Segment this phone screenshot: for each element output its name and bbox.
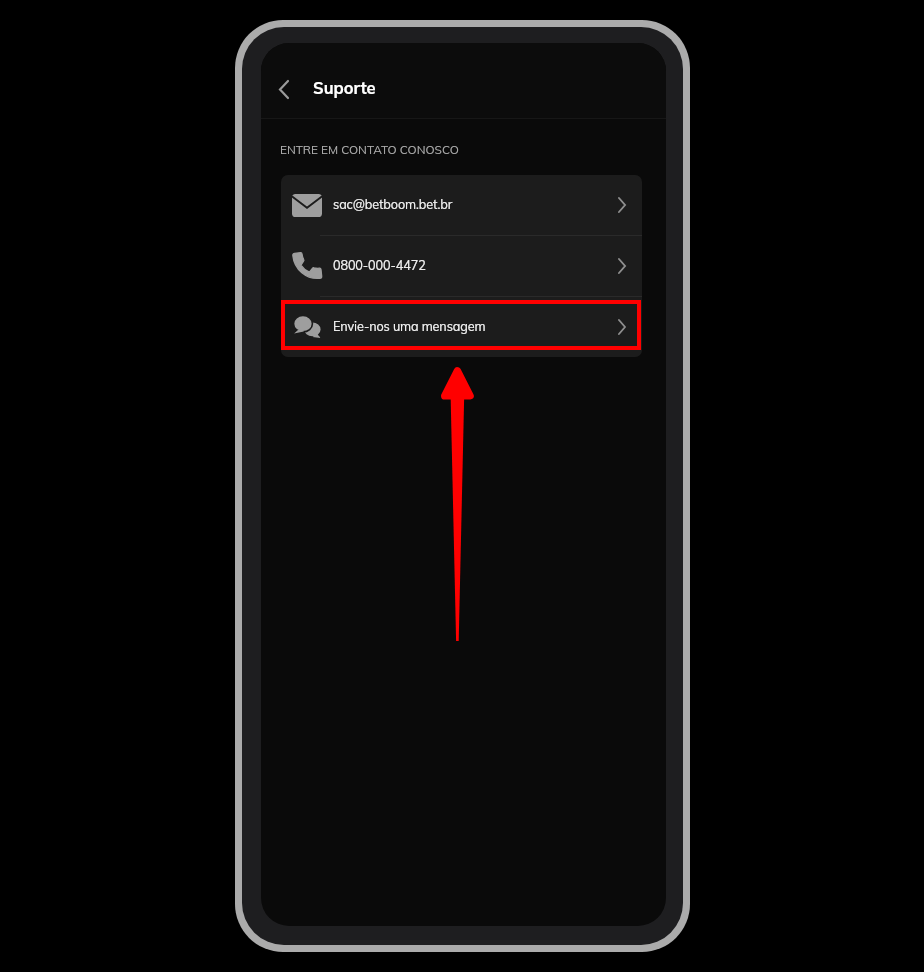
button[interactable]: Envie-nos uma mensagem (281, 297, 642, 357)
staticText: Envie-nos uma mensagem (333, 318, 486, 334)
staticText: sac@betboom.bet.br (333, 196, 453, 212)
button[interactable]: 0800-000-4472 (281, 236, 642, 296)
staticText: 0800-000-4472 (333, 257, 426, 273)
button[interactable]: sac@betboom.bet.br (281, 175, 642, 235)
staticText: ENTRE EM CONTATO CONOSCO (280, 142, 459, 157)
staticText: Suporte (313, 77, 376, 98)
button[interactable]: Back (261, 66, 307, 112)
